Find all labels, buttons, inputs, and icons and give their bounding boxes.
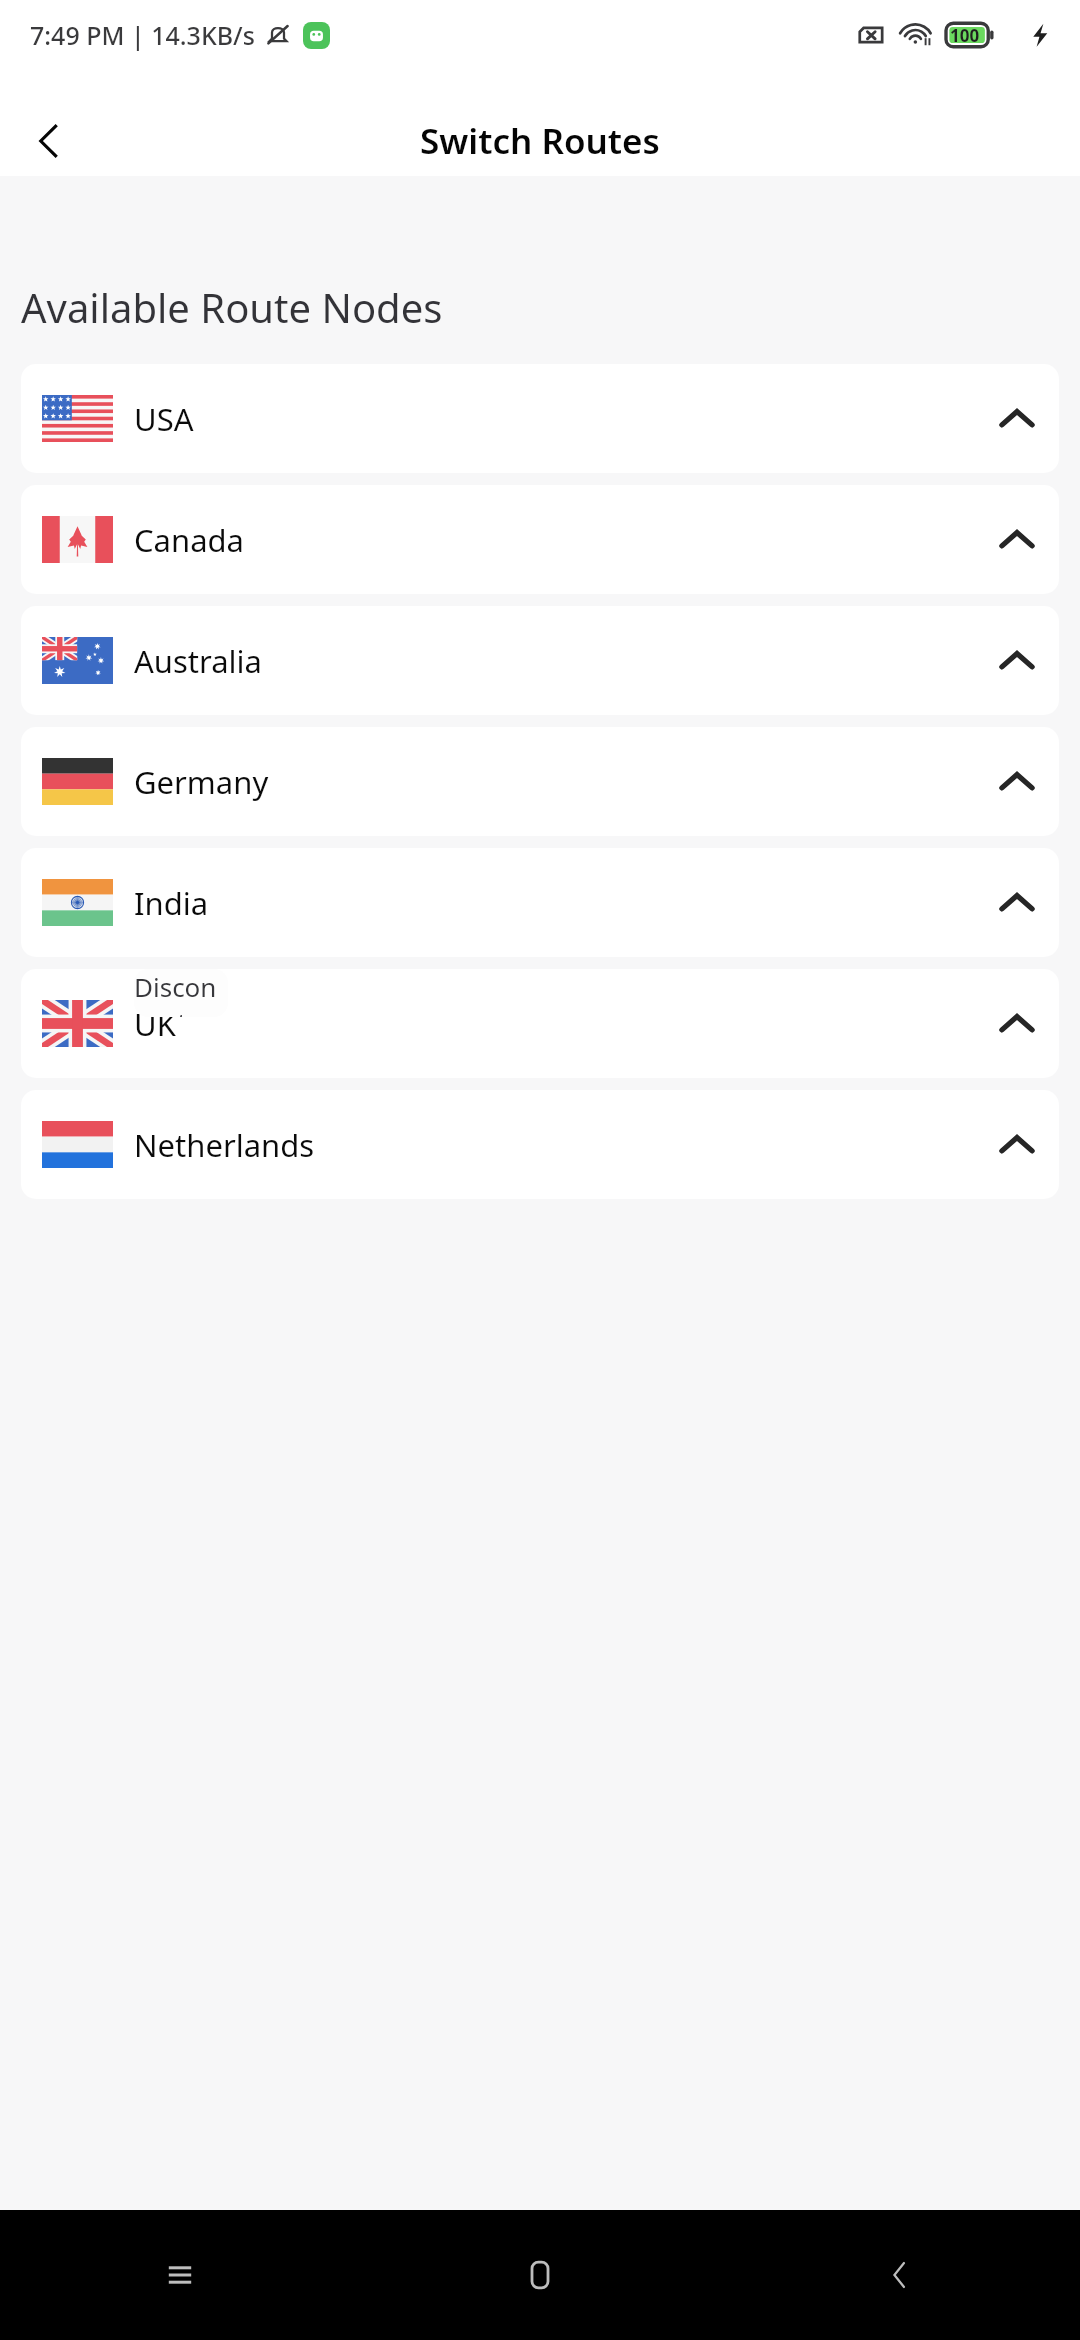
- button[interactable]: India: [21, 848, 1059, 957]
- button[interactable]: Canada: [21, 485, 1059, 594]
- other: Collapse Canada: [996, 519, 1038, 561]
- staticText: 100: [950, 24, 980, 47]
- button[interactable]: Disconnect: [134, 969, 228, 1017]
- button[interactable]: Back: [720, 2210, 1080, 2340]
- button[interactable]: Recents: [0, 2210, 360, 2340]
- staticText: Available Route Nodes: [21, 280, 443, 334]
- staticText: Disconnect: [134, 969, 228, 1017]
- button[interactable]: USA: [21, 364, 1059, 473]
- other: Collapse UK: [996, 1003, 1038, 1045]
- other: Collapse Germany: [996, 761, 1038, 803]
- other: Collapse India: [996, 882, 1038, 924]
- button[interactable]: Back: [20, 111, 80, 171]
- staticText: USA: [134, 398, 194, 440]
- other: Collapse USA: [996, 398, 1038, 440]
- staticText: Switch Routes: [420, 117, 660, 165]
- staticText: Germany: [134, 761, 269, 803]
- button[interactable]: Home: [360, 2210, 720, 2340]
- button[interactable]: Germany: [21, 727, 1059, 836]
- other: Collapse Australia: [996, 640, 1038, 682]
- button[interactable]: Netherlands: [21, 1090, 1059, 1199]
- other: Collapse Netherlands: [996, 1124, 1038, 1166]
- button[interactable]: UK: [21, 969, 1059, 1078]
- staticText: Canada: [134, 519, 244, 561]
- staticText: 7:49 PM | 14.3KB/s: [30, 18, 255, 52]
- staticText: UK: [134, 1003, 176, 1045]
- staticText: Netherlands: [134, 1124, 315, 1166]
- button[interactable]: Australia: [21, 606, 1059, 715]
- staticText: Australia: [134, 640, 262, 682]
- staticText: India: [134, 882, 209, 924]
